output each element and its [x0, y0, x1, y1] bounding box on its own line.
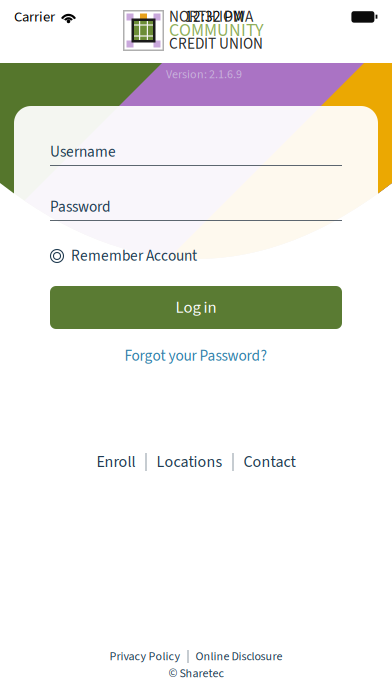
- staticText: Username: [50, 141, 116, 163]
- staticText: Forgot your Password?: [124, 345, 267, 367]
- staticText: Password: [50, 196, 111, 218]
- button[interactable]: Contact: [233, 452, 305, 472]
- staticText: Online Disclosure: [195, 648, 282, 665]
- staticText: COMMUNITY: [169, 18, 264, 43]
- button[interactable]: Online Disclosure: [188, 649, 289, 664]
- staticText: © Sharetec: [168, 665, 223, 682]
- button[interactable]: Forgot your Password?: [50, 347, 342, 365]
- staticText: Enroll: [96, 451, 135, 473]
- button[interactable]: Locations: [146, 452, 232, 472]
- button[interactable]: Privacy Policy: [102, 649, 187, 664]
- button[interactable]: Log in: [50, 286, 342, 329]
- staticText: 12:32 PM: [185, 6, 244, 28]
- staticText: Remember Account: [71, 245, 197, 267]
- staticText: Locations: [156, 451, 222, 473]
- button[interactable]: Enroll: [86, 452, 145, 472]
- staticText: NORTH IOWA: [169, 6, 253, 28]
- staticText: Privacy Policy: [109, 648, 180, 665]
- staticText: CREDIT UNION: [169, 33, 263, 55]
- staticText: Contact: [243, 451, 295, 473]
- staticText: Carrier: [14, 6, 55, 27]
- staticText: Log in: [175, 296, 216, 319]
- staticText: Version: 2.1.6.9: [166, 66, 242, 83]
